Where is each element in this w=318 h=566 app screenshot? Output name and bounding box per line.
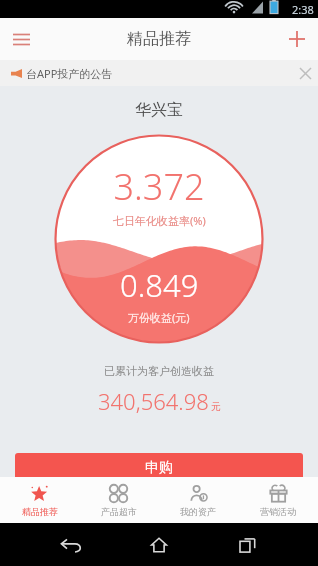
button[interactable]: 申购 <box>15 453 303 483</box>
staticText: 已累计为客户创造收益 <box>104 364 214 378</box>
staticText: 0.849 <box>120 264 199 306</box>
staticText: 营销活动 <box>260 506 296 517</box>
staticText: 华兴宝 <box>135 100 183 120</box>
button[interactable]: 产品超市 <box>79 477 158 523</box>
staticText: 台APP投产的公告 <box>26 66 113 81</box>
button[interactable]: 我的资产 <box>158 477 238 523</box>
button[interactable]: 精品推荐 <box>0 477 79 523</box>
staticText: 3.372 <box>113 162 205 211</box>
staticText: 精品推荐 <box>22 506 58 517</box>
button[interactable]: Recent apps <box>227 525 267 565</box>
staticText: 精品推荐 <box>127 29 191 49</box>
staticText: 元 <box>211 400 221 413</box>
staticText: 2:38 <box>292 2 314 17</box>
staticText: 七日年化收益率(%) <box>113 213 206 228</box>
staticText: 万份收益(元) <box>128 310 190 325</box>
button[interactable]: Close announcement <box>292 60 318 86</box>
button[interactable]: 台APP投产的公告 <box>0 60 318 86</box>
button[interactable]: Back <box>51 525 91 565</box>
button[interactable]: Home <box>139 525 179 565</box>
staticText: 产品超市 <box>101 506 137 517</box>
button[interactable]: Add <box>276 18 318 60</box>
button[interactable]: 营销活动 <box>238 477 318 523</box>
staticText: 我的资产 <box>180 506 216 517</box>
staticText: 340,564.98 <box>98 386 209 416</box>
button[interactable]: Menu <box>0 18 42 60</box>
staticText: 申购 <box>145 459 173 477</box>
